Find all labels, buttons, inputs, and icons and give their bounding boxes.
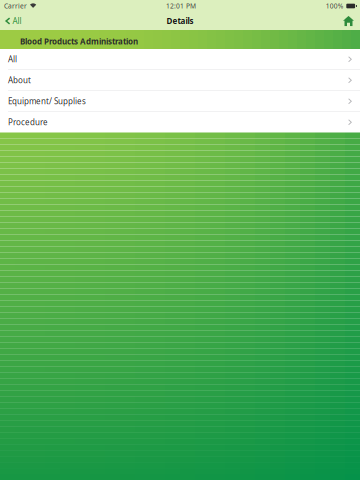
staticText: Carrier bbox=[4, 2, 27, 10]
button[interactable]: All bbox=[0, 49, 360, 69]
button[interactable]: About bbox=[0, 70, 360, 90]
staticText: About bbox=[8, 75, 31, 85]
button[interactable]: All bbox=[0, 12, 27, 30]
staticText: All bbox=[13, 16, 22, 26]
staticText: Procedure bbox=[8, 117, 48, 127]
staticText: 100% bbox=[326, 2, 344, 10]
button[interactable]: Procedure bbox=[0, 112, 360, 132]
staticText: Blood Products Administration bbox=[20, 36, 138, 47]
staticText: 12:01 PM bbox=[166, 2, 196, 10]
staticText: Details bbox=[166, 16, 193, 26]
staticText: Equipment/ Supplies bbox=[8, 96, 86, 106]
button[interactable]: Equipment/ Supplies bbox=[0, 91, 360, 111]
staticText: All bbox=[8, 54, 17, 64]
button[interactable]: Home bbox=[337, 12, 360, 30]
